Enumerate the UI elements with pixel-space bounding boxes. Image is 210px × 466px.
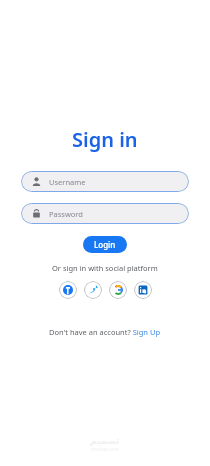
button[interactable]: Login	[83, 236, 127, 253]
staticText: Login	[94, 239, 116, 250]
button[interactable]: Password	[21, 203, 189, 224]
button[interactable]: Sign in with LinkedIn	[134, 281, 152, 299]
staticText: تصميم	[90, 436, 120, 446]
staticText: Don't have an account? Sign Up	[49, 327, 161, 337]
button[interactable]: Sign in with Facebook	[59, 281, 77, 299]
button[interactable]: Username	[21, 171, 189, 192]
staticText: Username	[49, 177, 86, 187]
staticText: mockup.com	[91, 446, 119, 452]
button[interactable]: Sign in with Google	[109, 281, 127, 299]
staticText: Sign in	[72, 126, 138, 153]
staticText: Or sign in with social platform	[52, 263, 158, 273]
button[interactable]: Don't have an account? Sign Up	[45, 325, 165, 339]
button[interactable]: Sign in with Twitter	[84, 281, 102, 299]
staticText: Password	[49, 209, 83, 219]
